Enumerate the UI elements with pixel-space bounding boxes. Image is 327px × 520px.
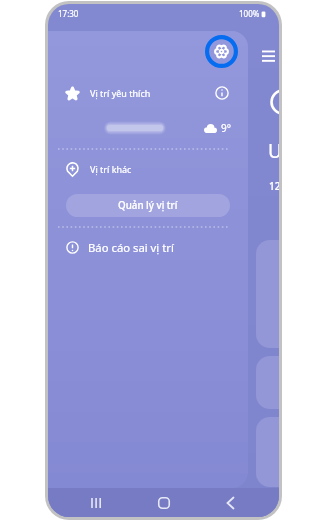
button[interactable]: Quản lý vị trí: [66, 194, 230, 217]
button[interactable]: Back: [216, 488, 244, 517]
staticText: Vị trí yêu thích: [90, 87, 151, 99]
button[interactable]: Home: [150, 488, 178, 517]
staticText: U: [268, 138, 279, 164]
button[interactable]: Settings: [205, 35, 238, 68]
staticText: Báo cáo sai vị trí: [88, 240, 174, 255]
staticText: 12: [269, 179, 279, 193]
staticText: Vị trí khác: [90, 163, 132, 175]
button[interactable]: Vị trí yêu thích: [48, 79, 248, 107]
button[interactable]: 9°: [48, 116, 248, 140]
button[interactable]: Menu: [260, 46, 279, 66]
staticText: 100%: [239, 8, 260, 19]
button[interactable]: Báo cáo sai vị trí: [48, 233, 248, 261]
button[interactable]: Vị trí khác: [48, 155, 248, 183]
button[interactable]: Recent apps: [82, 488, 110, 517]
staticText: 9°: [221, 121, 231, 135]
staticText: Quản lý vị trí: [118, 199, 178, 212]
staticText: 17:30: [58, 8, 79, 19]
